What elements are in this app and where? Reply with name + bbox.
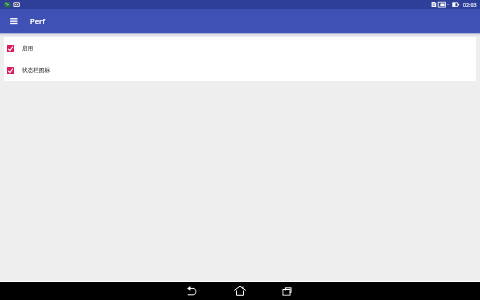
staticText: Perf xyxy=(30,16,45,26)
staticText: 状态栏图标 xyxy=(22,67,50,74)
button[interactable]: 状态栏图标 xyxy=(4,59,476,81)
staticText: 启用 xyxy=(22,45,34,52)
button[interactable]: Open navigation menu xyxy=(1,9,27,33)
staticText: 02:03 xyxy=(463,1,477,8)
staticText: 状态栏图标 xyxy=(22,67,50,74)
button[interactable]: 启用 xyxy=(4,37,476,59)
button[interactable]: Back xyxy=(168,282,216,300)
button[interactable]: Home xyxy=(216,282,264,300)
button[interactable]: Recent apps xyxy=(264,282,312,300)
staticText: 启用 xyxy=(22,45,34,52)
